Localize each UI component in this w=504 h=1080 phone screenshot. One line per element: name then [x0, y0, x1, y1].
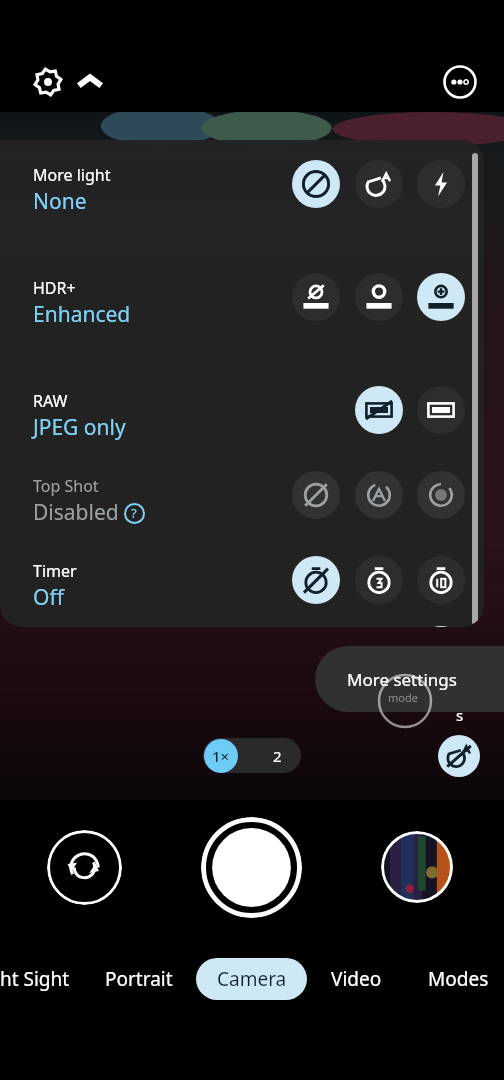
staticText: mode	[388, 690, 418, 705]
button[interactable]: More settings	[315, 646, 504, 712]
staticText: 2	[273, 746, 282, 766]
button[interactable]: HDR+ option 1	[292, 273, 340, 321]
staticText: Enhanced	[33, 300, 131, 329]
button[interactable]: Timer option 3	[417, 556, 465, 604]
button[interactable]: Settings	[24, 58, 72, 106]
button[interactable]: Help	[122, 501, 146, 525]
button[interactable]: HDR+ option 3	[417, 273, 465, 321]
button[interactable]: Video	[331, 966, 382, 992]
button[interactable]: More light option 3	[417, 160, 465, 208]
button[interactable]: Top Shot option 2	[355, 471, 403, 519]
button[interactable]: More light option 1	[292, 160, 340, 208]
staticText: None	[33, 187, 87, 216]
staticText: HDR+	[33, 277, 76, 299]
button[interactable]: Ratio option 1	[355, 626, 403, 627]
button[interactable]: Collapse options	[66, 58, 114, 106]
staticText: ?	[131, 504, 137, 522]
button[interactable]: RAW option 1	[355, 386, 403, 434]
staticText: More light	[33, 164, 111, 186]
button[interactable]: Ratio option 2	[417, 626, 465, 627]
staticText: Top Shot	[33, 475, 99, 497]
button[interactable]: Timer option 2	[355, 556, 403, 604]
button[interactable]: Timer option 1	[292, 556, 340, 604]
staticText: More settings	[347, 668, 457, 691]
staticText: Camera	[217, 966, 287, 992]
button[interactable]: Flash auto off	[438, 735, 480, 777]
staticText: Timer	[33, 560, 77, 582]
staticText: s	[456, 705, 464, 725]
button[interactable]: Modes	[428, 966, 489, 992]
button[interactable]: More options	[438, 60, 482, 104]
button[interactable]: Top Shot option 3	[417, 471, 465, 519]
button[interactable]: RAW option 2	[417, 386, 465, 434]
staticText: Disabled	[33, 498, 119, 527]
staticText: JPEG only	[33, 413, 126, 442]
button[interactable]: ht Sight	[0, 966, 70, 992]
button[interactable]: Portrait	[105, 966, 173, 992]
staticText: Off	[33, 583, 64, 612]
button[interactable]: More light option 2	[355, 160, 403, 208]
button[interactable]: Switch camera	[47, 830, 122, 905]
staticText: RAW	[33, 390, 68, 412]
button[interactable]: 1×	[203, 738, 301, 773]
button[interactable]: Shutter	[201, 817, 302, 918]
button[interactable]: Top Shot option 1	[292, 471, 340, 519]
button[interactable]: 1×	[204, 739, 238, 773]
button[interactable]: Gallery	[381, 831, 453, 903]
button[interactable]: Camera	[196, 958, 307, 1000]
staticText: 1×	[212, 746, 230, 766]
button[interactable]: HDR+ option 2	[355, 273, 403, 321]
